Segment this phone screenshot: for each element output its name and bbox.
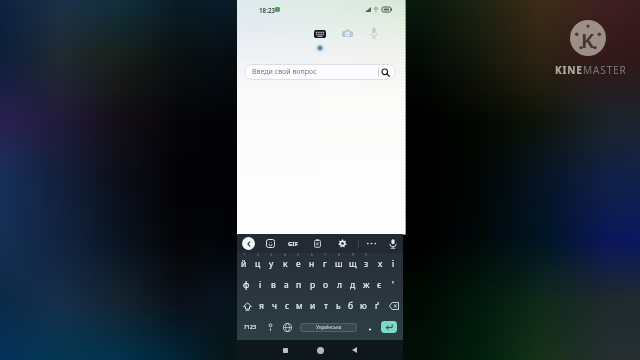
- button[interactable]: ж: [359, 274, 373, 296]
- staticText: ф: [243, 279, 250, 291]
- staticText: ч: [272, 300, 278, 312]
- button[interactable]: х: [373, 251, 387, 273]
- button[interactable]: Recent apps: [277, 342, 293, 358]
- button[interactable]: Clipboard: [308, 234, 326, 253]
- staticText: 6: [311, 252, 314, 257]
- staticText: и: [310, 300, 316, 312]
- button[interactable]: ч: [268, 295, 281, 317]
- button[interactable]: Camera input: [336, 22, 358, 44]
- button[interactable]: Settings: [333, 234, 351, 253]
- staticText: 3: [270, 252, 273, 257]
- button[interactable]: 0: [359, 251, 373, 273]
- staticText: ґ: [375, 300, 379, 312]
- button[interactable]: 3: [264, 251, 278, 273]
- staticText: т: [324, 300, 328, 312]
- button[interactable]: м: [293, 295, 306, 317]
- staticText: к: [283, 258, 288, 270]
- button[interactable]: с: [281, 295, 294, 317]
- button[interactable]: Українська: [300, 323, 357, 332]
- staticText: 7: [324, 252, 327, 257]
- staticText: Українська: [316, 324, 342, 331]
- staticText: 1: [243, 252, 246, 257]
- staticText: 0: [365, 252, 368, 257]
- staticText: Введи свой вопрос: [252, 67, 317, 77]
- staticText: р: [310, 279, 316, 291]
- button[interactable]: б: [344, 295, 357, 317]
- button[interactable]: 6: [305, 251, 319, 273]
- button[interactable]: 5: [291, 251, 305, 273]
- staticText: ш: [335, 258, 343, 270]
- staticText: ь: [336, 300, 341, 312]
- staticText: ?123: [244, 323, 257, 331]
- button[interactable]: Voice input: [384, 234, 402, 253]
- button[interactable]: ь: [332, 295, 345, 317]
- staticText: а: [284, 279, 289, 291]
- button[interactable]: [364, 316, 376, 338]
- button[interactable]: ф: [239, 274, 253, 296]
- button[interactable]: GIF: [284, 234, 302, 253]
- button[interactable]: 1: [237, 251, 251, 273]
- button[interactable]: 2: [251, 251, 265, 273]
- button[interactable]: ю: [357, 295, 370, 317]
- staticText: щ: [349, 258, 357, 270]
- button[interactable]: Change language: [279, 316, 295, 338]
- staticText: я: [259, 300, 264, 312]
- staticText: й: [241, 258, 247, 270]
- staticText: б: [348, 300, 354, 312]
- staticText: GIF: [288, 240, 298, 248]
- button[interactable]: в: [266, 274, 280, 296]
- staticText: н: [309, 258, 315, 270]
- staticText: 2: [257, 252, 260, 257]
- button[interactable]: д: [346, 274, 360, 296]
- button[interactable]: а: [279, 274, 293, 296]
- staticText: в: [271, 279, 276, 291]
- staticText: у: [269, 258, 274, 270]
- button[interactable]: і: [253, 274, 267, 296]
- button[interactable]: 4: [278, 251, 292, 273]
- staticText: ж: [363, 279, 370, 291]
- button[interactable]: Back: [346, 342, 362, 358]
- staticText: с: [285, 300, 290, 312]
- button[interactable]: о: [319, 274, 333, 296]
- button[interactable]: ?123: [241, 316, 259, 338]
- staticText: MASTER: [583, 63, 627, 77]
- staticText: г: [323, 258, 327, 270]
- button[interactable]: є: [372, 274, 386, 296]
- staticText: д: [350, 279, 356, 291]
- button[interactable]: Comma: [263, 316, 277, 338]
- button[interactable]: Home: [312, 342, 328, 358]
- button[interactable]: я: [255, 295, 268, 317]
- button[interactable]: л: [332, 274, 346, 296]
- button[interactable]: и: [306, 295, 319, 317]
- staticText: л: [337, 279, 342, 291]
- button[interactable]: ї: [386, 251, 400, 273]
- button[interactable]: Enter: [381, 321, 397, 333]
- button[interactable]: 8: [332, 251, 346, 273]
- button[interactable]: Введи свой вопрос: [244, 64, 396, 80]
- button[interactable]: Voice input: [363, 22, 385, 44]
- button[interactable]: ': [386, 274, 400, 296]
- button[interactable]: Backspace: [386, 295, 402, 317]
- staticText: 8: [338, 252, 341, 257]
- staticText: K: [581, 27, 595, 54]
- staticText: ю: [360, 300, 367, 312]
- staticText: м: [296, 300, 303, 312]
- staticText: 5: [297, 252, 300, 257]
- staticText: і: [259, 279, 262, 291]
- staticText: з: [364, 258, 369, 270]
- staticText: ї: [392, 258, 395, 270]
- staticText: о: [323, 279, 329, 291]
- button[interactable]: Back: [242, 237, 255, 250]
- button[interactable]: 7: [318, 251, 332, 273]
- staticText: 18:23: [259, 6, 276, 15]
- button[interactable]: Stickers: [261, 234, 279, 253]
- button[interactable]: Keyboard input: [309, 23, 331, 45]
- button[interactable]: Shift: [239, 295, 255, 317]
- staticText: ': [392, 279, 394, 291]
- button[interactable]: т: [319, 295, 332, 317]
- button[interactable]: More options: [362, 234, 380, 253]
- button[interactable]: р: [306, 274, 320, 296]
- button[interactable]: п: [292, 274, 306, 296]
- button[interactable]: ґ: [370, 295, 383, 317]
- button[interactable]: 9: [346, 251, 360, 273]
